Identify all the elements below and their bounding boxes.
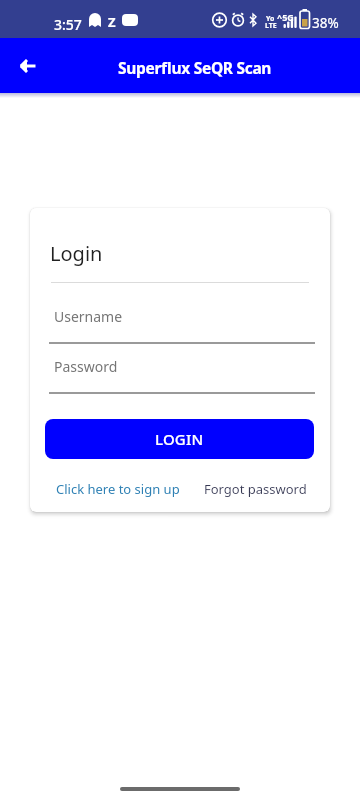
staticText: Username: [54, 307, 123, 326]
staticText: Z: [108, 13, 116, 31]
staticText: 3:57: [54, 15, 82, 34]
staticText: 38%: [312, 14, 339, 32]
staticText: Login: [50, 240, 103, 267]
staticText: Password: [54, 357, 118, 376]
staticText: LTE: [265, 21, 277, 31]
staticText: Superflux SeQR Scan: [118, 57, 272, 78]
button[interactable]: [10, 48, 46, 84]
button[interactable]: Click here to sign up: [56, 480, 180, 498]
button[interactable]: [46, 350, 318, 396]
staticText: ^5G: [277, 11, 294, 23]
button[interactable]: LOGIN: [45, 419, 314, 459]
button[interactable]: Forgot password: [204, 480, 307, 498]
staticText: Yo: [266, 14, 275, 24]
staticText: LOGIN: [155, 429, 204, 449]
button[interactable]: [46, 300, 318, 346]
